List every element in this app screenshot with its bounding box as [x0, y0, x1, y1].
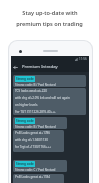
staticText: on higher levels	[15, 103, 38, 107]
staticText: For TGT 3111226.2815.40+++	[15, 110, 56, 114]
staticText: premium tips on trading	[16, 20, 83, 28]
staticText: 11:56	[79, 57, 87, 61]
staticText: Stay up-to-date with	[22, 9, 78, 17]
button[interactable]: Strong code	[13, 75, 86, 87]
staticText: Strong code	[16, 162, 34, 166]
staticText: with chg of+1.940/1130	[15, 138, 48, 142]
staticText: Strong code: C / Fwd Revised	[15, 168, 56, 171]
staticText: TCS looks weak at+220	[15, 89, 47, 93]
button[interactable]: Back	[11, 62, 89, 72]
button[interactable]: Strong code	[13, 160, 67, 172]
button[interactable]: PnB Looks great at+1786	[13, 130, 64, 152]
staticText: Strong code: B / Fwd Revised	[15, 125, 56, 128]
staticText: PnB Looks great at+1786	[15, 131, 51, 135]
button[interactable]: TCS looks weak at+220	[13, 88, 86, 115]
staticText: PnB Looks great at+1184	[15, 175, 51, 179]
staticText: Strong code	[16, 77, 34, 81]
staticText: for Trgt of+1730/1766+++	[15, 145, 51, 149]
other: Back	[13, 65, 18, 70]
button[interactable]: Strong code	[13, 117, 67, 129]
staticText: Strong code: B / Fwd Revised	[15, 83, 56, 86]
staticText: Strong code	[16, 119, 34, 123]
button[interactable]: PnB Looks great at+1184	[13, 174, 64, 183]
staticText: Premium Intraday	[22, 64, 58, 70]
staticText: with chg of+2.0% brk and will set again	[15, 96, 70, 100]
